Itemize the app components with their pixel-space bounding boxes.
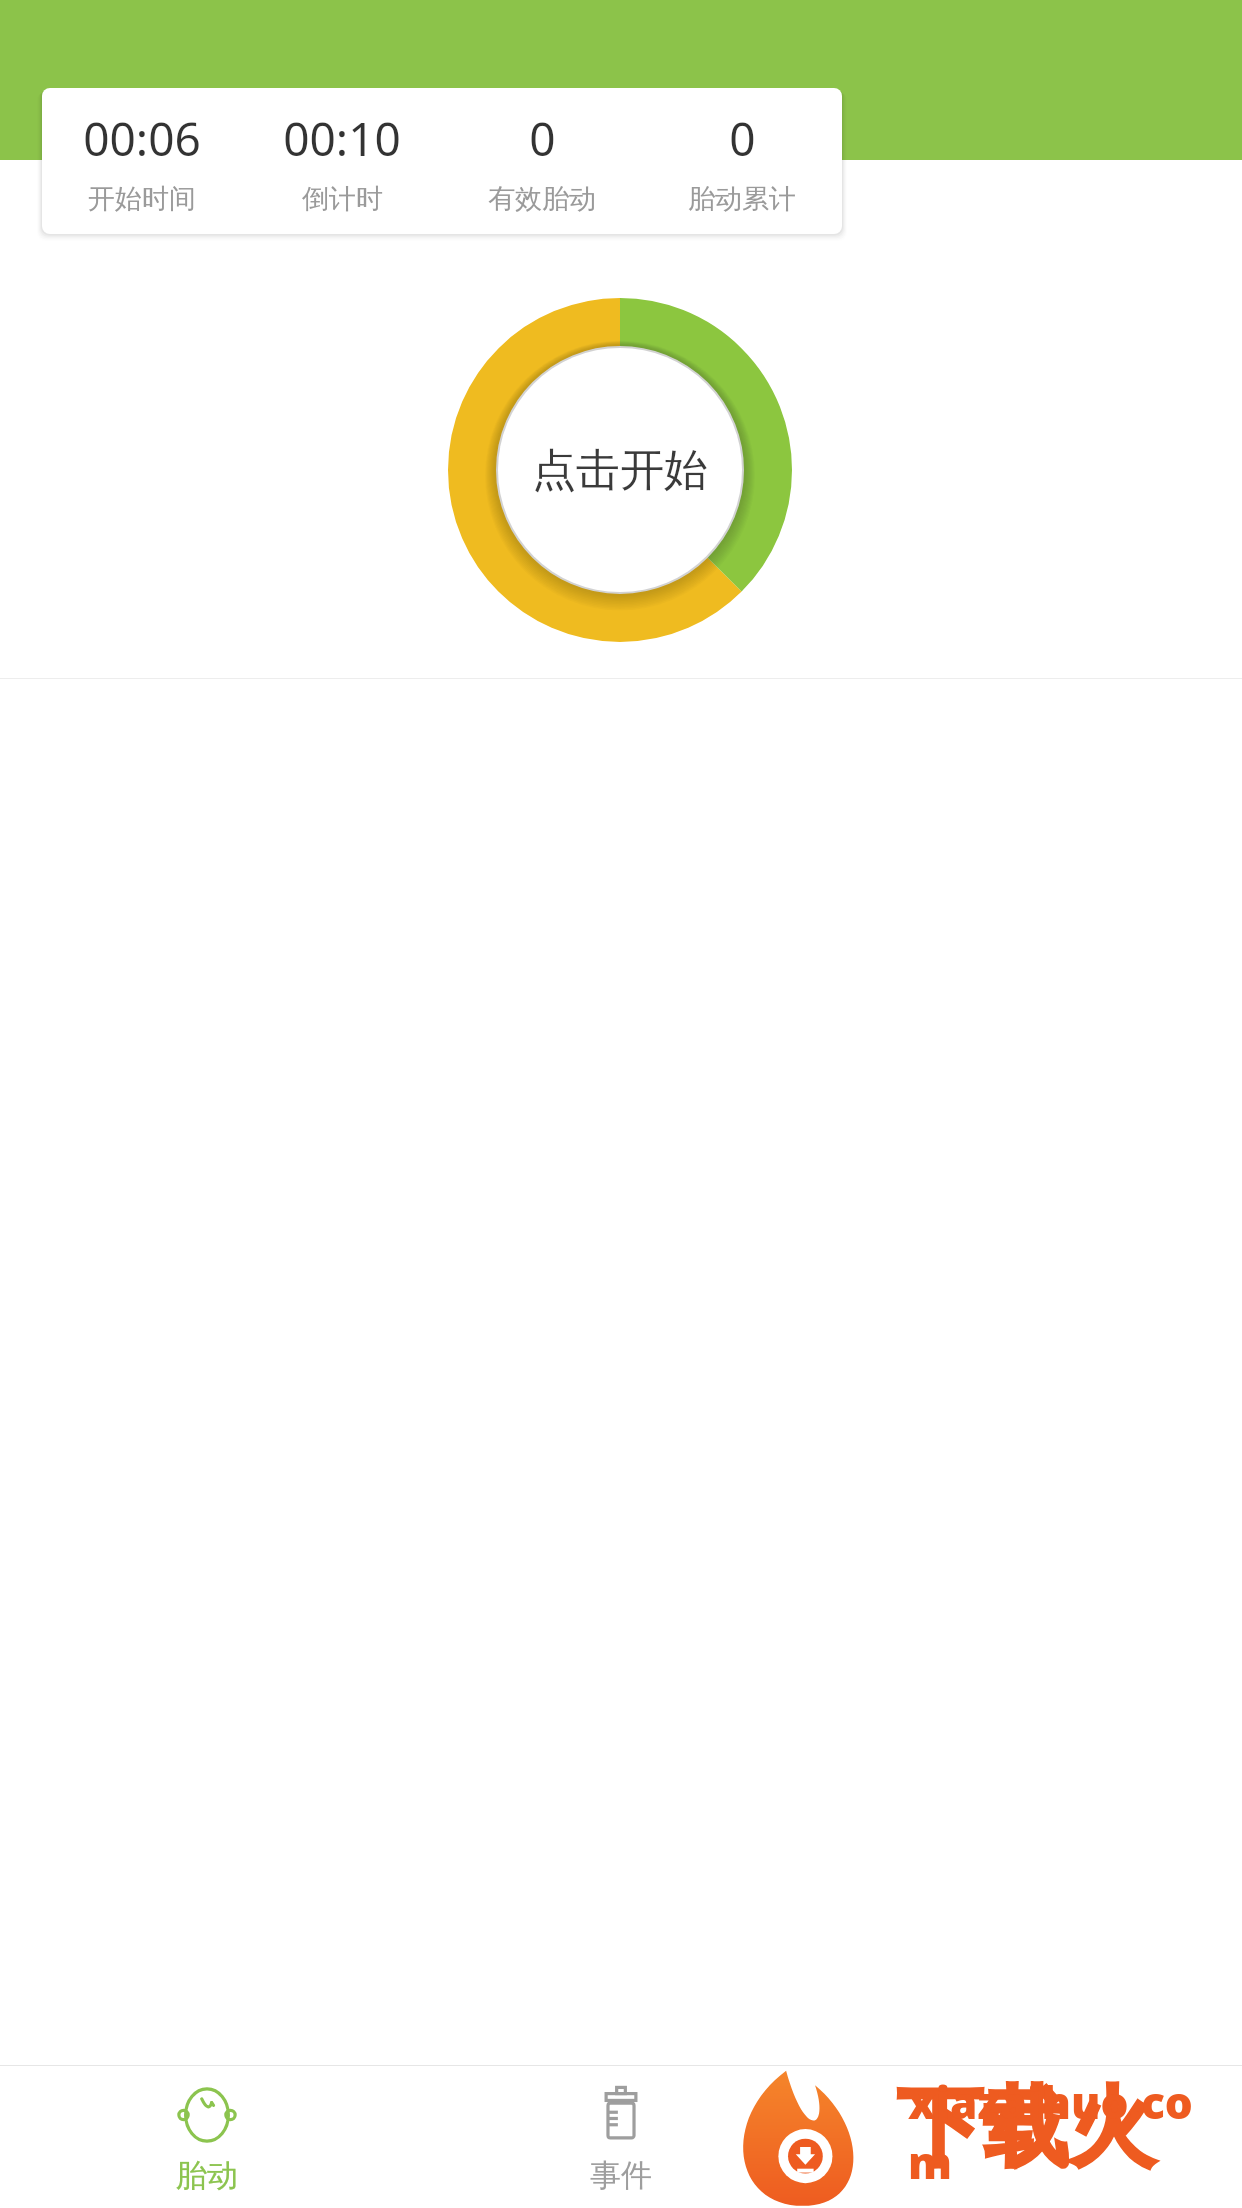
button[interactable]: 00:06 [42,107,242,216]
button[interactable]: 00:10 [242,107,442,216]
staticText: 下载火 [897,2074,1155,2182]
staticText: 胎动 [176,2156,238,2195]
staticText: 事件 [590,2156,652,2195]
staticText: 开始时间 [88,182,196,216]
staticText: 有效胎动 [488,182,596,216]
button[interactable]: 0 [442,107,642,216]
staticText: xiazaihuo.com [908,2072,1232,2192]
staticText: 倒计时 [302,182,383,216]
staticText: 胎动累计 [688,182,796,216]
button[interactable]: 胎动 [0,2066,414,2208]
button[interactable]: 0 [642,107,842,216]
button[interactable]: 事件 [414,2066,828,2208]
staticText: 00:06 [83,107,201,170]
staticText: 0 [529,107,556,170]
staticText: 点击开始 [532,443,708,498]
staticText: 0 [729,107,756,170]
staticText: 00:10 [283,107,401,170]
button[interactable]: 点击开始 [498,348,742,592]
